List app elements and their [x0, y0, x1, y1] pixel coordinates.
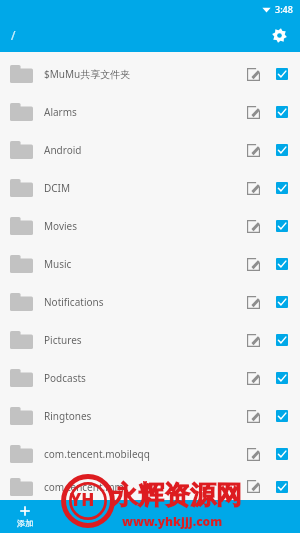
button[interactable]: Alarms	[0, 93, 300, 131]
staticText: Android	[44, 143, 238, 157]
button[interactable]: $MuMu共享文件夹	[0, 55, 300, 93]
button[interactable]: Music	[0, 245, 300, 283]
button[interactable]: Select item	[268, 473, 296, 500]
button[interactable]: Android	[0, 131, 300, 169]
staticText: 3:48	[275, 3, 293, 15]
button[interactable]: Select item	[268, 212, 296, 240]
staticText: www.yhkjjj.com	[122, 513, 223, 529]
button[interactable]: Select item	[268, 60, 296, 88]
button[interactable]: Select item	[268, 288, 296, 316]
button[interactable]: Select item	[268, 440, 296, 468]
button[interactable]: Select item	[268, 326, 296, 354]
button[interactable]: Settings	[263, 19, 295, 51]
staticText: Movies	[44, 219, 238, 233]
button[interactable]: Select item	[268, 98, 296, 126]
button[interactable]: Ringtones	[0, 397, 300, 435]
button[interactable]: 添加	[17, 505, 33, 528]
button[interactable]: Select item	[268, 364, 296, 392]
staticText: com.tencent.mm	[44, 480, 238, 494]
staticText: Podcasts	[44, 371, 238, 385]
staticText: 添加	[17, 518, 33, 528]
button[interactable]: Select item	[268, 250, 296, 278]
button[interactable]: Notifications	[0, 283, 300, 321]
button[interactable]: Select item	[268, 174, 296, 202]
button[interactable]: Rename	[238, 59, 268, 89]
staticText: Music	[44, 257, 238, 271]
button[interactable]: Select item	[268, 402, 296, 430]
staticText: 永辉资源网	[112, 479, 242, 512]
button[interactable]: Pictures	[0, 321, 300, 359]
staticText: YH	[70, 488, 95, 511]
button[interactable]: DCIM	[0, 169, 300, 207]
staticText: $MuMu共享文件夹	[44, 67, 238, 81]
button[interactable]: Select item	[268, 136, 296, 164]
button[interactable]: com.tencent.mm	[0, 473, 300, 500]
staticText: DCIM	[44, 181, 238, 195]
button[interactable]: Rename	[238, 473, 268, 500]
button[interactable]: Rename	[238, 439, 268, 469]
staticText: Notifications	[44, 295, 238, 309]
staticText: Ringtones	[44, 409, 238, 423]
staticText: com.tencent.mobileqq	[44, 447, 238, 461]
button[interactable]: Movies	[0, 207, 300, 245]
staticText: /	[11, 27, 16, 43]
button[interactable]: Rename	[238, 401, 268, 431]
button[interactable]: Rename	[238, 173, 268, 203]
button[interactable]: Rename	[238, 135, 268, 165]
button[interactable]: Rename	[238, 325, 268, 355]
button[interactable]: Rename	[238, 363, 268, 393]
button[interactable]: com.tencent.mobileqq	[0, 435, 300, 473]
button[interactable]: Podcasts	[0, 359, 300, 397]
button[interactable]: Rename	[238, 97, 268, 127]
staticText: Alarms	[44, 105, 238, 119]
button[interactable]: Rename	[238, 249, 268, 279]
button[interactable]: Rename	[238, 211, 268, 241]
button[interactable]: Rename	[238, 287, 268, 317]
staticText: Pictures	[44, 333, 238, 347]
